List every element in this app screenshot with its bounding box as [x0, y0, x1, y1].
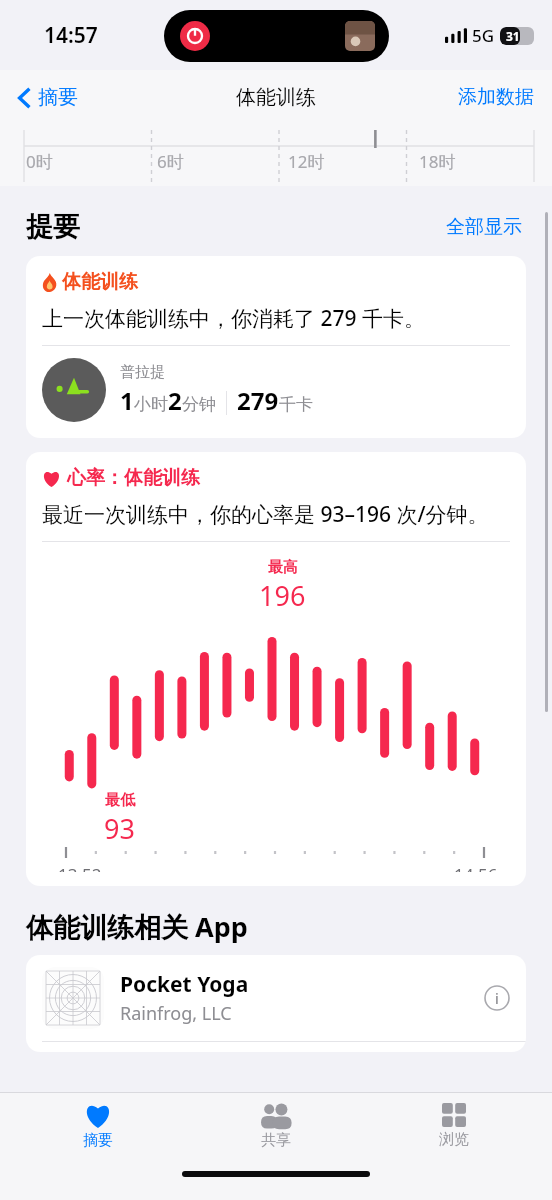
staticText: Pocket Yoga [120, 970, 249, 999]
button[interactable]: Info [484, 985, 510, 1011]
staticText: 18时 [419, 150, 456, 173]
staticText: 小时 [134, 394, 168, 415]
button[interactable]: 摘要 [14, 81, 82, 114]
staticText: 最近一次训练中，你的心率是 93–196 次/分钟。 [42, 500, 489, 529]
staticText: 分钟 [182, 394, 216, 415]
button[interactable]: Pocket Yoga [26, 955, 526, 1041]
staticText: 93 [104, 810, 135, 847]
staticText: 2 [168, 384, 182, 417]
button[interactable]: 浏览 [374, 1099, 534, 1153]
staticText: 普拉提 [120, 363, 165, 382]
staticText: 0时 [26, 150, 53, 173]
staticText: 196 [259, 577, 306, 614]
staticText: 摘要 [83, 1131, 113, 1150]
button[interactable]: 心率：体能训练 [26, 452, 526, 886]
staticText: 体能训练 [236, 85, 316, 110]
staticText: 279 [237, 384, 279, 417]
staticText: 添加数据 [458, 85, 534, 109]
button[interactable]: 共享 [196, 1099, 356, 1154]
staticText: 1 [120, 384, 134, 417]
staticText: 上一次体能训练中，你消耗了 279 千卡。 [42, 304, 425, 333]
staticText: 体能训练相关 App [26, 908, 248, 945]
staticText: 12时 [288, 150, 325, 173]
staticText: 浏览 [439, 1130, 469, 1149]
staticText: 体能训练 [62, 270, 138, 294]
button[interactable]: 全部显示 [442, 211, 526, 243]
staticText: i [495, 989, 499, 1008]
staticText: 最低 [105, 791, 135, 810]
staticText: 6时 [157, 150, 184, 173]
staticText: 31 [506, 28, 520, 44]
button[interactable]: 体能训练 [26, 256, 526, 438]
staticText: Rainfrog, LLC [120, 1001, 232, 1026]
staticText: 5G [472, 24, 495, 47]
button[interactable]: 添加数据 [454, 81, 538, 113]
button[interactable]: 摘要 [18, 1099, 178, 1154]
staticText: 14:56 [454, 863, 498, 872]
staticText: 13:52 [58, 863, 102, 872]
staticText: 摘要 [38, 85, 78, 110]
staticText: 全部显示 [446, 215, 522, 239]
staticText: 千卡 [279, 394, 313, 415]
staticText: 最高 [268, 558, 298, 577]
staticText: 提要 [26, 210, 80, 244]
staticText: 共享 [261, 1131, 291, 1150]
staticText: 14:57 [44, 21, 98, 50]
staticText: 心率：体能训练 [67, 466, 200, 490]
